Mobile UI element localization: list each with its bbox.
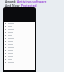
button[interactable] bbox=[4, 25, 35, 28]
button[interactable] bbox=[4, 49, 35, 52]
button[interactable] bbox=[4, 28, 35, 31]
button[interactable] bbox=[4, 58, 35, 61]
button[interactable] bbox=[4, 52, 35, 55]
button[interactable] bbox=[4, 34, 35, 37]
staticText: Antivirus software bbox=[17, 0, 47, 4]
button[interactable] bbox=[4, 22, 35, 25]
staticText: Award: bbox=[5, 0, 17, 4]
button[interactable] bbox=[4, 43, 35, 46]
button[interactable] bbox=[4, 37, 35, 40]
button[interactable] bbox=[4, 31, 35, 34]
staticText: Protected bbox=[21, 4, 37, 8]
button[interactable] bbox=[4, 40, 35, 43]
staticText: And Now bbox=[5, 4, 21, 8]
button[interactable] bbox=[4, 46, 35, 49]
button[interactable] bbox=[4, 61, 35, 64]
button[interactable] bbox=[4, 55, 35, 58]
